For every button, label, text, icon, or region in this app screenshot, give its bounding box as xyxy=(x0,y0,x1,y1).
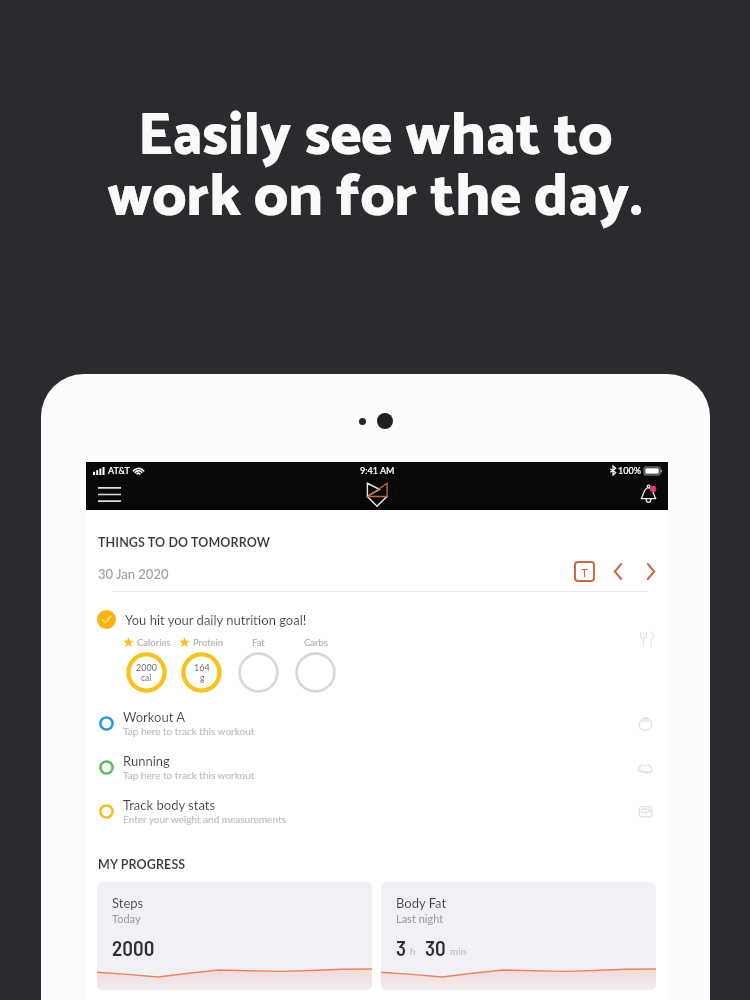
staticText: 30 xyxy=(425,935,446,960)
staticText: Easily see what to work on for the day. xyxy=(0,89,750,246)
staticText: Protein xyxy=(193,637,224,648)
staticText: Tap here to track this workout xyxy=(123,769,255,781)
staticText: THINGS TO DO TOMORROW xyxy=(98,535,270,550)
staticText: Running xyxy=(123,753,170,769)
button[interactable]: Steps xyxy=(97,882,372,990)
button[interactable]: Calories xyxy=(126,652,167,693)
staticText: Calories xyxy=(137,637,171,648)
staticText: min xyxy=(450,945,467,957)
staticText: 164 xyxy=(194,662,210,673)
staticText: You hit your daily nutrition goal! xyxy=(125,612,307,628)
staticText: MY PROGRESS xyxy=(98,857,186,872)
staticText: Steps xyxy=(112,895,144,911)
staticText: AT&T xyxy=(108,465,130,476)
button[interactable]: Fat xyxy=(238,652,279,693)
staticText: 100% xyxy=(618,465,641,476)
staticText: Body Fat xyxy=(396,895,447,911)
staticText: cal xyxy=(141,673,152,683)
button[interactable]: Menu xyxy=(94,479,124,509)
staticText: 2000 xyxy=(136,662,157,673)
staticText: g xyxy=(200,673,205,683)
button[interactable]: Next day xyxy=(640,560,662,582)
staticText: Workout A xyxy=(123,709,186,725)
staticText: Track body stats xyxy=(123,797,216,813)
staticText: Tap here to track this workout xyxy=(123,725,255,737)
staticText: 3 xyxy=(396,935,407,960)
staticText: Today xyxy=(112,912,141,925)
staticText: Enter your weight and measurements xyxy=(123,813,286,825)
button[interactable]: Track body stats xyxy=(86,789,668,833)
button[interactable]: Body Fat xyxy=(381,882,656,990)
staticText: 30 Jan 2020 xyxy=(98,566,169,582)
button[interactable]: Notifications xyxy=(633,479,663,509)
staticText: T xyxy=(581,565,589,579)
staticText: Fat xyxy=(252,637,265,648)
button[interactable]: Previous day xyxy=(607,560,629,582)
staticText: Carbs xyxy=(304,637,328,648)
button[interactable]: Home xyxy=(361,478,393,510)
button[interactable]: Carbs xyxy=(295,652,336,693)
button[interactable]: Running xyxy=(86,745,668,789)
staticText: Last night xyxy=(396,912,444,925)
staticText: 2000 xyxy=(112,935,155,960)
button[interactable]: Protein xyxy=(181,652,222,693)
button[interactable]: Workout A xyxy=(86,701,668,745)
button[interactable]: Today xyxy=(574,561,595,582)
staticText: h xyxy=(410,945,416,957)
staticText: 9:41 AM xyxy=(360,465,395,476)
